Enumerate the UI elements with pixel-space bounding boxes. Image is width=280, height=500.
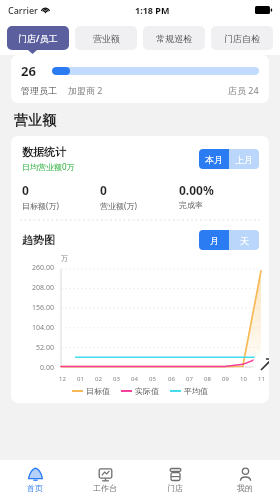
staticText: 月 (210, 235, 219, 246)
staticText: 趋势图 (22, 233, 199, 247)
staticText: 0.00 (40, 363, 54, 373)
staticText: 常规巡检 (156, 33, 192, 44)
staticText: 工作台 (93, 483, 117, 493)
button[interactable]: 首页 (0, 460, 70, 500)
staticText: 我的 (237, 483, 253, 493)
staticText: 1:18 PM (135, 4, 170, 16)
staticText: 门店/员工 (18, 32, 58, 44)
button[interactable]: 天 (229, 230, 259, 250)
staticText: 156.00 (32, 303, 54, 313)
button[interactable]: 门店自检 (211, 26, 273, 50)
staticText: 门店 (167, 483, 183, 493)
staticText: 260.00 (32, 263, 54, 273)
staticText: 04 (131, 375, 138, 383)
staticText: 营业额 (93, 33, 120, 44)
staticText: 万 (61, 254, 68, 263)
staticText: 天 (240, 235, 249, 246)
staticText: 目标额(万) (22, 200, 59, 211)
button[interactable]: 我的 (210, 460, 280, 500)
button[interactable]: 本月 (199, 149, 229, 169)
staticText: 26 (21, 62, 36, 80)
staticText: 09 (222, 375, 229, 383)
staticText: 上月 (235, 154, 253, 165)
staticText: 管理员工 (21, 85, 57, 96)
button[interactable]: 营业额 (75, 26, 137, 50)
staticText: 01 (77, 375, 84, 383)
staticText: 10 (240, 375, 247, 383)
staticText: 02 (95, 375, 102, 383)
button[interactable]: 门店 (140, 460, 210, 500)
staticText: 06 (168, 375, 175, 383)
staticText: 52.00 (36, 343, 54, 353)
staticText: 店员 24 (228, 84, 259, 96)
staticText: 目标值 (86, 386, 110, 396)
staticText: 营业额(万) (100, 200, 137, 211)
staticText: 门店自检 (224, 33, 260, 44)
staticText: 实际值 (135, 386, 159, 396)
button[interactable]: 常规巡检 (143, 26, 205, 50)
staticText: 加盟商 2 (68, 84, 103, 96)
staticText: 12 (59, 375, 66, 383)
staticText: 日均营业额0万 (22, 161, 75, 172)
staticText: 05 (149, 375, 156, 383)
staticText: 营业额 (14, 112, 56, 130)
staticText: 0.00% (179, 182, 214, 198)
staticText: 08 (204, 375, 211, 383)
staticText: 平均值 (184, 386, 208, 396)
staticText: 完成率 (179, 200, 203, 210)
staticText: 11 (258, 375, 265, 383)
staticText: Carrier (8, 4, 38, 16)
button[interactable]: 上月 (229, 149, 259, 169)
staticText: 0 (22, 182, 29, 198)
button[interactable]: 月 (199, 230, 229, 250)
button[interactable]: 工作台 (70, 460, 140, 500)
button[interactable]: 门店/员工 (7, 26, 69, 50)
staticText: 07 (186, 375, 193, 383)
staticText: 0 (100, 182, 107, 198)
staticText: 104.00 (32, 323, 54, 333)
button[interactable]: 26 (11, 55, 269, 103)
staticText: 03 (113, 375, 120, 383)
button[interactable]: Expand chart (253, 351, 269, 377)
staticText: 首页 (27, 483, 43, 493)
staticText: 本月 (205, 154, 223, 165)
staticText: 数据统计 (22, 145, 66, 159)
staticText: 208.00 (32, 283, 54, 293)
